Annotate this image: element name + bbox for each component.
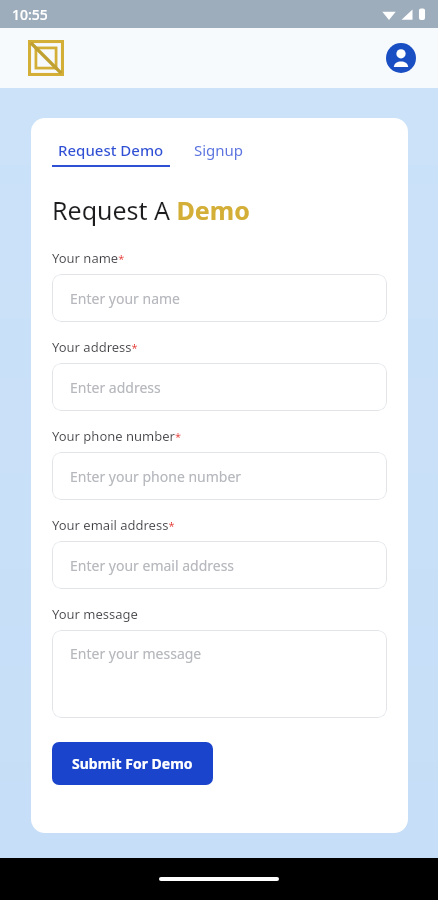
staticText: Submit For Demo [72, 754, 193, 773]
staticText: Your email address* [52, 516, 175, 534]
button[interactable]: Request Demo [52, 140, 170, 167]
button[interactable]: Enter your message [52, 630, 387, 718]
staticText: Your phone number* [52, 427, 181, 445]
button[interactable]: Submit For Demo [52, 742, 213, 785]
button[interactable]: Enter your phone number [52, 452, 387, 500]
staticText: Your name* [52, 249, 125, 267]
button[interactable]: Account [386, 43, 416, 73]
button[interactable]: Logo [28, 40, 64, 76]
button[interactable]: Signup [194, 140, 244, 167]
staticText: Enter your message [70, 644, 202, 663]
staticText: Enter your name [70, 289, 180, 308]
staticText: Your message [52, 605, 138, 623]
staticText: Your address* [52, 338, 138, 356]
staticText: Request A Demo [52, 193, 250, 227]
staticText: 10:55 [12, 5, 48, 24]
staticText: Enter your phone number [70, 467, 242, 486]
button[interactable]: Enter your name [52, 274, 387, 322]
staticText: Signup [194, 140, 244, 160]
staticText: Request Demo [58, 140, 164, 160]
button[interactable]: Enter address [52, 363, 387, 411]
staticText: Enter your email address [70, 556, 235, 575]
button[interactable]: Enter your email address [52, 541, 387, 589]
staticText: Enter address [70, 378, 161, 397]
